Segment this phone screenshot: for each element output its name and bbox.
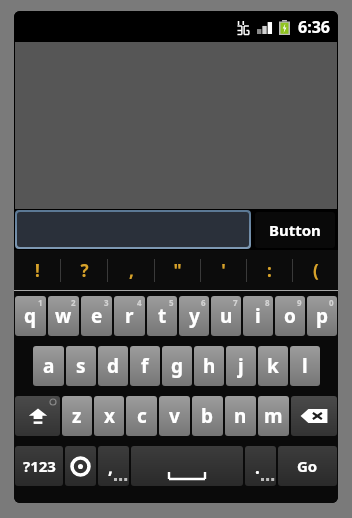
button[interactable]: h [194, 346, 224, 386]
button[interactable] [15, 210, 251, 249]
staticText: r [125, 303, 134, 329]
staticText: e [91, 303, 103, 329]
button[interactable]: q [15, 296, 46, 336]
button[interactable]: ? [61, 250, 107, 291]
button[interactable]: v [159, 396, 190, 436]
button[interactable]: m [258, 396, 289, 436]
button[interactable]: a [33, 346, 64, 386]
button[interactable]: Shift [15, 396, 60, 436]
button[interactable]: ( [293, 250, 338, 291]
staticText: t [158, 303, 167, 329]
staticText: z [72, 403, 82, 429]
button[interactable]: ! [14, 250, 60, 291]
button[interactable]: l [290, 346, 320, 386]
button[interactable]: " [155, 250, 200, 291]
button[interactable]: Button [255, 212, 335, 248]
button[interactable]: r [114, 296, 145, 336]
button[interactable]: g [162, 346, 192, 386]
staticText: d [107, 353, 120, 379]
staticText: 6 [201, 297, 206, 308]
staticText: ! [35, 259, 40, 282]
staticText: b [201, 403, 214, 429]
button[interactable]: s [66, 346, 96, 386]
staticText: u [220, 303, 233, 329]
staticText: 6:36 [298, 16, 330, 38]
staticText: 8 [265, 297, 270, 308]
button[interactable]: Go [278, 446, 337, 486]
button[interactable]: , [98, 446, 129, 486]
button[interactable]: , [108, 250, 154, 291]
button[interactable]: c [126, 396, 157, 436]
staticText: j [238, 353, 244, 379]
staticText: f [141, 353, 149, 379]
staticText: l [302, 353, 308, 379]
staticText: y [189, 303, 200, 329]
staticText: x [104, 403, 115, 429]
button[interactable]: : [247, 250, 292, 291]
staticText: n [234, 403, 247, 429]
button[interactable]: e [81, 296, 112, 336]
staticText: 9 [297, 297, 302, 308]
staticText: h [203, 353, 216, 379]
button[interactable]: b [192, 396, 223, 436]
button[interactable]: k [258, 346, 288, 386]
staticText: i [255, 303, 261, 329]
button[interactable]: w [48, 296, 79, 336]
staticText: w [55, 303, 72, 329]
staticText: 3 [104, 297, 109, 308]
staticText: g [171, 353, 184, 379]
staticText: ( [313, 259, 319, 282]
staticText: ?123 [23, 456, 56, 476]
staticText: 4 [137, 297, 142, 308]
staticText: o [284, 303, 296, 329]
staticText: : [267, 259, 272, 282]
button[interactable]: o [275, 296, 305, 336]
button[interactable]: j [226, 346, 256, 386]
staticText: 1 [38, 297, 43, 308]
button[interactable]: t [147, 296, 177, 336]
button[interactable]: Space [131, 446, 243, 486]
staticText: ? [80, 259, 89, 282]
staticText: ' [221, 259, 226, 282]
staticText: 2 [71, 297, 76, 308]
staticText: Button [269, 220, 321, 240]
button[interactable]: i [243, 296, 273, 336]
button[interactable]: f [130, 346, 160, 386]
button[interactable]: y [179, 296, 209, 336]
button[interactable]: z [62, 396, 92, 436]
staticText: . [255, 456, 260, 479]
button[interactable]: u [211, 296, 241, 336]
staticText: s [76, 353, 86, 379]
button[interactable]: n [225, 396, 256, 436]
button[interactable]: . [245, 446, 276, 486]
staticText: q [24, 303, 37, 329]
button[interactable]: x [94, 396, 124, 436]
staticText: 7 [233, 297, 238, 308]
button[interactable]: ?123 [15, 446, 63, 486]
button[interactable]: ' [201, 250, 246, 291]
staticText: v [169, 403, 180, 429]
staticText: a [43, 353, 55, 379]
staticText: Go [297, 456, 318, 476]
button[interactable]: p [307, 296, 337, 336]
staticText: 5 [169, 297, 174, 308]
staticText: " [173, 259, 182, 282]
staticText: , [129, 259, 134, 282]
staticText: c [137, 403, 147, 429]
button[interactable]: d [98, 346, 128, 386]
button[interactable]: Keyboard settings [65, 446, 96, 486]
staticText: p [316, 303, 329, 329]
staticText: k [267, 353, 279, 379]
staticText: 0 [329, 297, 334, 308]
staticText: , [108, 456, 113, 479]
staticText: m [264, 403, 283, 429]
button[interactable]: Backspace [291, 396, 337, 436]
